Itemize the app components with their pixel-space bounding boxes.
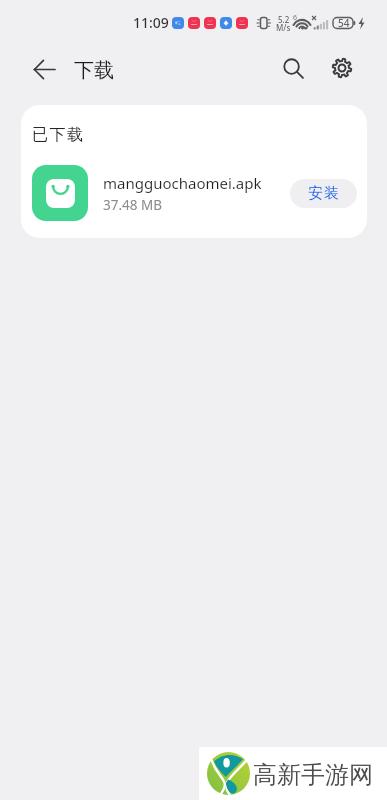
button[interactable]: mangguochaomei.apk xyxy=(21,162,367,224)
staticText: 11:09 xyxy=(133,13,169,32)
staticText: 安装 xyxy=(308,184,339,203)
staticText: 37.48 MB xyxy=(103,196,163,214)
button[interactable]: Settings xyxy=(320,46,364,90)
staticText: 高新手游网 xyxy=(253,760,373,790)
button[interactable]: 安装 xyxy=(290,179,357,208)
staticText: 5.2 xyxy=(278,14,290,25)
staticText: 54 xyxy=(338,16,350,30)
button[interactable]: Back xyxy=(22,47,66,91)
staticText: mangguochaomei.apk xyxy=(103,173,262,193)
button[interactable]: Search xyxy=(271,46,315,90)
staticText: M/s xyxy=(276,22,291,33)
staticText: 6 xyxy=(293,13,298,23)
staticText: 已下载 xyxy=(32,125,85,145)
staticText: 下载 xyxy=(74,58,114,83)
